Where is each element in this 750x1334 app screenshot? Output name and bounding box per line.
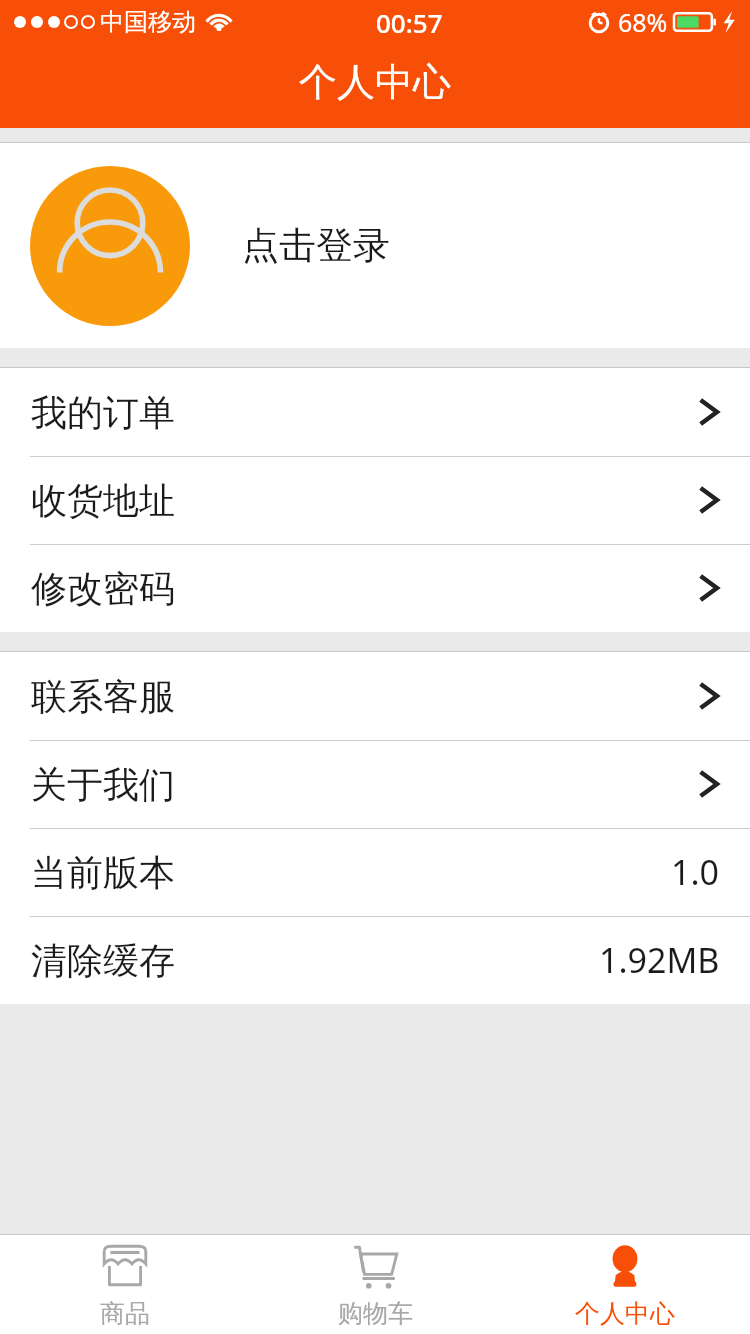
button[interactable]: 关于我们 xyxy=(0,740,750,828)
staticText: 商品 xyxy=(100,1298,150,1329)
staticText: 1.0 xyxy=(671,849,720,895)
staticText: 当前版本 xyxy=(31,850,175,895)
staticText: 修改密码 xyxy=(31,566,175,611)
staticText: 点击登录 xyxy=(242,222,390,269)
button[interactable]: 修改密码 xyxy=(0,544,750,632)
button[interactable]: 清除缓存 xyxy=(0,916,750,1004)
button[interactable]: 购物车 xyxy=(250,1235,500,1334)
staticText: 个人中心 xyxy=(299,58,451,106)
staticText: 我的订单 xyxy=(31,390,175,435)
staticText: 收货地址 xyxy=(31,478,175,523)
button[interactable]: 个人中心 xyxy=(500,1235,750,1334)
button[interactable]: 收货地址 xyxy=(0,456,750,544)
staticText: 68% xyxy=(618,5,668,39)
button[interactable]: 当前版本 xyxy=(0,828,750,916)
button[interactable]: 我的订单 xyxy=(0,368,750,456)
staticText: 关于我们 xyxy=(31,762,175,807)
staticText: 购物车 xyxy=(338,1298,413,1329)
staticText: 清除缓存 xyxy=(31,938,175,983)
button[interactable]: 联系客服 xyxy=(0,652,750,740)
button[interactable]: 商品 xyxy=(0,1235,250,1334)
button[interactable]: 点击登录 xyxy=(0,143,750,348)
staticText: 00:57 xyxy=(376,5,443,40)
staticText: 中国移动 xyxy=(100,7,196,37)
staticText: 联系客服 xyxy=(31,674,175,719)
staticText: 个人中心 xyxy=(575,1298,675,1329)
staticText: 1.92MB xyxy=(599,937,720,983)
